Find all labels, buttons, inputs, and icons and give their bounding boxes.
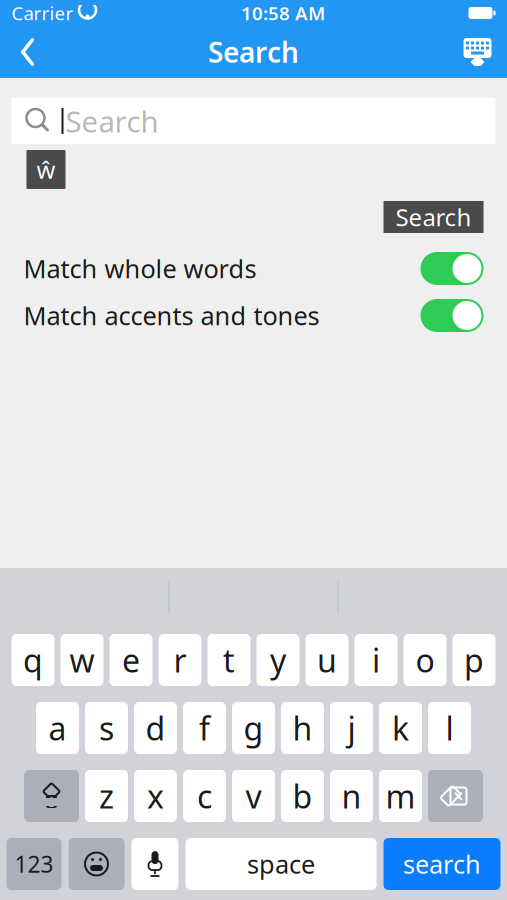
button[interactable]: Search (11, 98, 495, 144)
button[interactable]: Match whole words (0, 245, 507, 292)
staticText: x (147, 775, 164, 817)
button[interactable]: search (383, 838, 500, 890)
staticText: Carrier (11, 1, 73, 25)
staticText: × (453, 784, 464, 808)
staticText: r (173, 639, 186, 681)
staticText: c (197, 775, 212, 817)
staticText: t (223, 639, 235, 681)
staticText: v (245, 775, 261, 817)
staticText: ŵ (36, 154, 55, 185)
staticText: w (69, 639, 94, 681)
button[interactable]: e (109, 634, 152, 686)
button[interactable]: f (183, 702, 226, 754)
button[interactable]: o (403, 634, 446, 686)
staticText: o (415, 639, 434, 681)
staticText: y (270, 639, 286, 681)
button[interactable]: Match accents and tones (0, 292, 507, 339)
button[interactable]: j (330, 702, 373, 754)
staticText: d (145, 707, 165, 749)
button[interactable]: d (134, 702, 177, 754)
button[interactable]: h (281, 702, 324, 754)
button[interactable]: l (428, 702, 471, 754)
button[interactable]: a (36, 702, 79, 754)
staticText: k (392, 707, 409, 749)
staticText: q (23, 639, 43, 681)
button[interactable]: c (183, 770, 226, 822)
staticText: e (122, 639, 140, 681)
button[interactable]: p (452, 634, 495, 686)
button[interactable]: Delete (428, 770, 483, 822)
button[interactable]: Dictation (131, 838, 178, 890)
staticText: l (445, 707, 453, 749)
staticText (72, 0, 78, 28)
staticText: i (372, 639, 380, 681)
staticText: Match whole words (23, 252, 256, 285)
button[interactable]: y (256, 634, 299, 686)
button[interactable]: Shift (24, 770, 79, 822)
staticText: Match accents and tones (23, 299, 319, 332)
button[interactable]: Dismiss keyboard (447, 26, 507, 78)
button[interactable]: 123 (6, 838, 61, 890)
button[interactable]: space (185, 838, 376, 890)
button[interactable]: t (207, 634, 250, 686)
button[interactable]: w (60, 634, 103, 686)
button[interactable]: Back (0, 26, 55, 78)
button[interactable]: n (330, 770, 373, 822)
button[interactable]: u (305, 634, 348, 686)
button[interactable]: g (232, 702, 275, 754)
staticText: f (199, 707, 210, 749)
button[interactable]: x (134, 770, 177, 822)
staticText: b (292, 775, 312, 817)
button[interactable]: q (11, 634, 54, 686)
staticText: Search (208, 33, 299, 71)
button[interactable]: s (85, 702, 128, 754)
staticText: 10:58 AM (241, 1, 325, 25)
staticText: p (464, 639, 484, 681)
staticText: search (403, 847, 481, 881)
button[interactable]: Search (383, 201, 483, 233)
staticText: m (385, 775, 415, 817)
button[interactable]: z (85, 770, 128, 822)
staticText: g (243, 707, 263, 749)
staticText: Search (65, 101, 158, 140)
button[interactable]: i (354, 634, 397, 686)
staticText: j (347, 707, 355, 749)
button[interactable]: b (281, 770, 324, 822)
button[interactable]: v (232, 770, 275, 822)
button[interactable]: m (379, 770, 422, 822)
button[interactable]: Emoji (68, 838, 124, 890)
staticText: Search (395, 201, 471, 233)
button[interactable]: ŵ (26, 150, 65, 189)
staticText: z (99, 775, 114, 817)
staticText: s (99, 707, 114, 749)
staticText: a (48, 707, 66, 749)
staticText: space (247, 847, 315, 881)
staticText: n (341, 775, 361, 817)
button[interactable]: k (379, 702, 422, 754)
staticText: h (292, 707, 312, 749)
button[interactable]: r (158, 634, 201, 686)
staticText: 123 (14, 849, 53, 879)
staticText: u (317, 639, 337, 681)
